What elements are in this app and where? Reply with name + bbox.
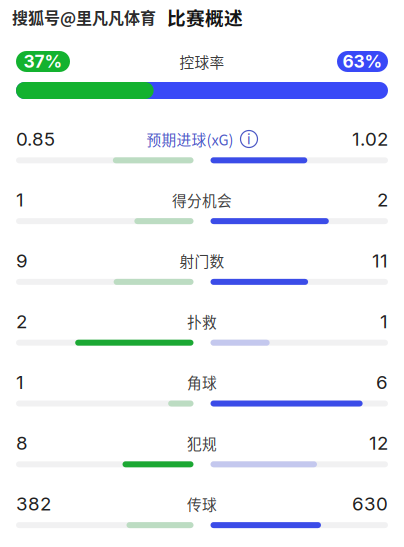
button[interactable]: 37% (16, 51, 70, 72)
staticText: 2 (16, 310, 27, 333)
staticText: 2 (377, 188, 388, 211)
staticText: 382 (16, 492, 51, 515)
staticText: 9 (16, 249, 28, 272)
staticText: 搜狐号@里凡凡体育 (12, 5, 156, 29)
staticText: 11 (372, 249, 388, 272)
staticText: 角球 (187, 372, 217, 393)
staticText: 比赛概述 (167, 3, 243, 30)
staticText: 0.85 (16, 128, 55, 150)
staticText: i (247, 130, 251, 148)
button[interactable]: 63% (337, 51, 388, 72)
staticText: 1 (16, 188, 24, 211)
staticText: 63% (342, 51, 382, 72)
staticText: 控球率 (179, 51, 224, 72)
staticText: 37% (23, 51, 62, 72)
staticText: 630 (352, 492, 388, 515)
staticText: 射门数 (179, 250, 224, 271)
staticText: 犯规 (187, 432, 217, 454)
staticText: 1 (380, 310, 388, 333)
staticText: 传球 (187, 493, 217, 514)
staticText: 1.02 (352, 128, 388, 150)
staticText: 得分机会 (172, 189, 232, 210)
staticText: 12 (369, 432, 388, 454)
staticText: 8 (16, 432, 28, 454)
staticText: 1 (16, 371, 24, 393)
button[interactable]: About expected goals (240, 130, 257, 147)
staticText: 预期进球(xG) (146, 128, 233, 150)
staticText: 扑救 (187, 311, 217, 332)
staticText: 6 (376, 371, 388, 393)
